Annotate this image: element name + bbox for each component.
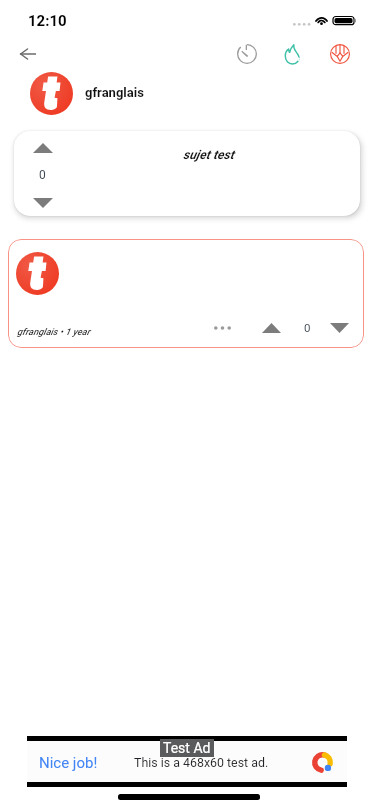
button[interactable]: Profile bbox=[319, 33, 360, 74]
button[interactable]: Nice job! bbox=[27, 741, 347, 782]
button[interactable]: Vote bbox=[14, 131, 360, 216]
button[interactable]: Vote bbox=[22, 135, 86, 212]
button[interactable]: History bbox=[226, 33, 267, 74]
staticText: Nice job! bbox=[39, 754, 98, 772]
button[interactable]: More options bbox=[204, 312, 240, 344]
button[interactable]: Downvote bbox=[321, 311, 357, 344]
staticText: 0 bbox=[304, 321, 311, 334]
staticText: gfranglais • 1 year bbox=[17, 326, 90, 337]
staticText: 0 bbox=[39, 168, 46, 182]
button[interactable]: Upvote bbox=[253, 311, 289, 344]
staticText: Test Ad bbox=[163, 740, 211, 756]
staticText: sujet test bbox=[183, 147, 234, 162]
button[interactable]: gfranglais • 1 year bbox=[8, 239, 364, 348]
staticText: 12:10 bbox=[28, 12, 67, 30]
staticText: This is a 468x60 test ad. bbox=[134, 755, 269, 770]
button[interactable]: Trending bbox=[272, 33, 313, 74]
button[interactable]: Back bbox=[8, 34, 48, 74]
staticText: gfranglais bbox=[85, 85, 144, 100]
